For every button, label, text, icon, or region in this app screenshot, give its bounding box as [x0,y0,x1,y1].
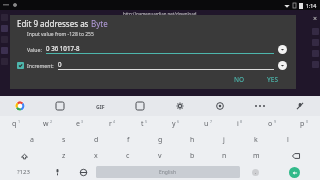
staticText: http://gameguardian.net/download [123,11,197,17]
staticText: ?123 [17,168,30,176]
staticText: l [287,135,289,145]
staticText: c [126,151,130,161]
button[interactable]: f [112,132,144,148]
staticText: 8 [240,119,243,124]
button[interactable]: Emoji [200,96,240,116]
button[interactable]: Google [0,96,40,116]
button[interactable]: h [176,132,208,148]
button[interactable]: r [96,116,128,132]
button[interactable]: Switch language [70,164,96,180]
staticText: j [223,135,225,145]
staticText: f [127,135,130,145]
staticText: b [190,151,195,161]
staticText: g [158,135,163,145]
button[interactable]: v [144,148,176,164]
staticText: × [313,14,318,24]
button[interactable]: c [112,148,144,164]
staticText: 9 [274,119,277,124]
button[interactable]: e [64,116,96,132]
staticText: 1:14 [306,2,317,9]
button[interactable]: w [32,116,64,132]
staticText: r [109,119,112,129]
staticText: s [62,135,66,145]
button[interactable]: z [48,148,80,164]
staticText: x [94,151,98,161]
button[interactable]: m [240,148,272,164]
staticText: Increment: [27,62,54,69]
staticText: 0 36 1017-8 [46,44,80,52]
button[interactable]: Increment checkbox [17,62,24,69]
button[interactable]: x [80,148,112,164]
staticText: a [30,135,34,145]
staticText: y [172,119,176,129]
button[interactable]: d [80,132,112,148]
staticText: n [222,151,227,161]
button[interactable]: p [288,116,320,132]
staticText: w [43,119,49,129]
button[interactable]: GIF [80,96,120,116]
staticText: Value: [27,46,42,53]
button[interactable]: t [128,116,160,132]
button[interactable]: s [48,132,80,148]
button[interactable]: NO [227,73,252,86]
button[interactable]: y [160,116,192,132]
staticText: v [158,151,162,161]
staticText: q [12,119,17,129]
button[interactable]: i [224,116,256,132]
button[interactable]: k [240,132,272,148]
staticText: English [159,169,177,176]
button[interactable]: l [272,132,304,148]
staticText: Edit 9 addresses as [17,18,91,29]
button[interactable]: English [96,166,240,178]
staticText: i [237,119,239,129]
button[interactable]: Enter [271,164,318,180]
staticText: GIF [96,103,105,110]
staticText: u [204,119,209,129]
button[interactable]: Voice off [280,96,320,116]
staticText: d [94,135,99,145]
staticText: Input value from -128 to 255 [27,31,94,38]
button[interactable]: More [240,96,280,116]
button[interactable]: n [208,148,240,164]
staticText: 4 [113,119,116,124]
staticText: z [62,151,66,161]
staticText: p [300,119,305,129]
staticText: 7 [210,119,213,124]
staticText: 1 [18,119,21,124]
button[interactable]: u [192,116,224,132]
button[interactable]: YES [260,73,285,86]
button[interactable]: g [144,132,176,148]
staticText: . [255,169,257,176]
button[interactable]: j [208,132,240,148]
staticText: 2 [50,119,53,124]
button[interactable]: Emoji [44,164,70,180]
staticText: YES [267,75,278,84]
button[interactable]: Settings [160,96,200,116]
staticText: 5 [145,119,148,124]
staticText: h [190,135,195,145]
button[interactable]: Clipboard [120,96,160,116]
staticText: 0 [306,119,309,124]
staticText: 3 [81,119,84,124]
button[interactable]: Backspace [272,148,320,164]
staticText: k [254,135,258,145]
staticText: NO [234,75,245,84]
staticText: m [253,151,260,161]
button[interactable]: o [256,116,288,132]
button[interactable]: q [0,116,32,132]
button[interactable]: a [16,132,48,148]
staticText: e [76,119,80,129]
staticText: o [268,119,273,129]
button[interactable]: Dropdown [278,45,287,54]
staticText: t [141,119,144,129]
button[interactable]: ?123 [2,164,44,180]
button[interactable]: Period [240,164,271,180]
button[interactable]: Shift [0,148,48,164]
staticText: 0 [58,60,62,68]
staticText: 6 [177,119,180,124]
button[interactable]: b [176,148,208,164]
button[interactable]: Dropdown [278,61,287,70]
staticText: Byte [91,18,108,29]
button[interactable]: Stickers [40,96,80,116]
